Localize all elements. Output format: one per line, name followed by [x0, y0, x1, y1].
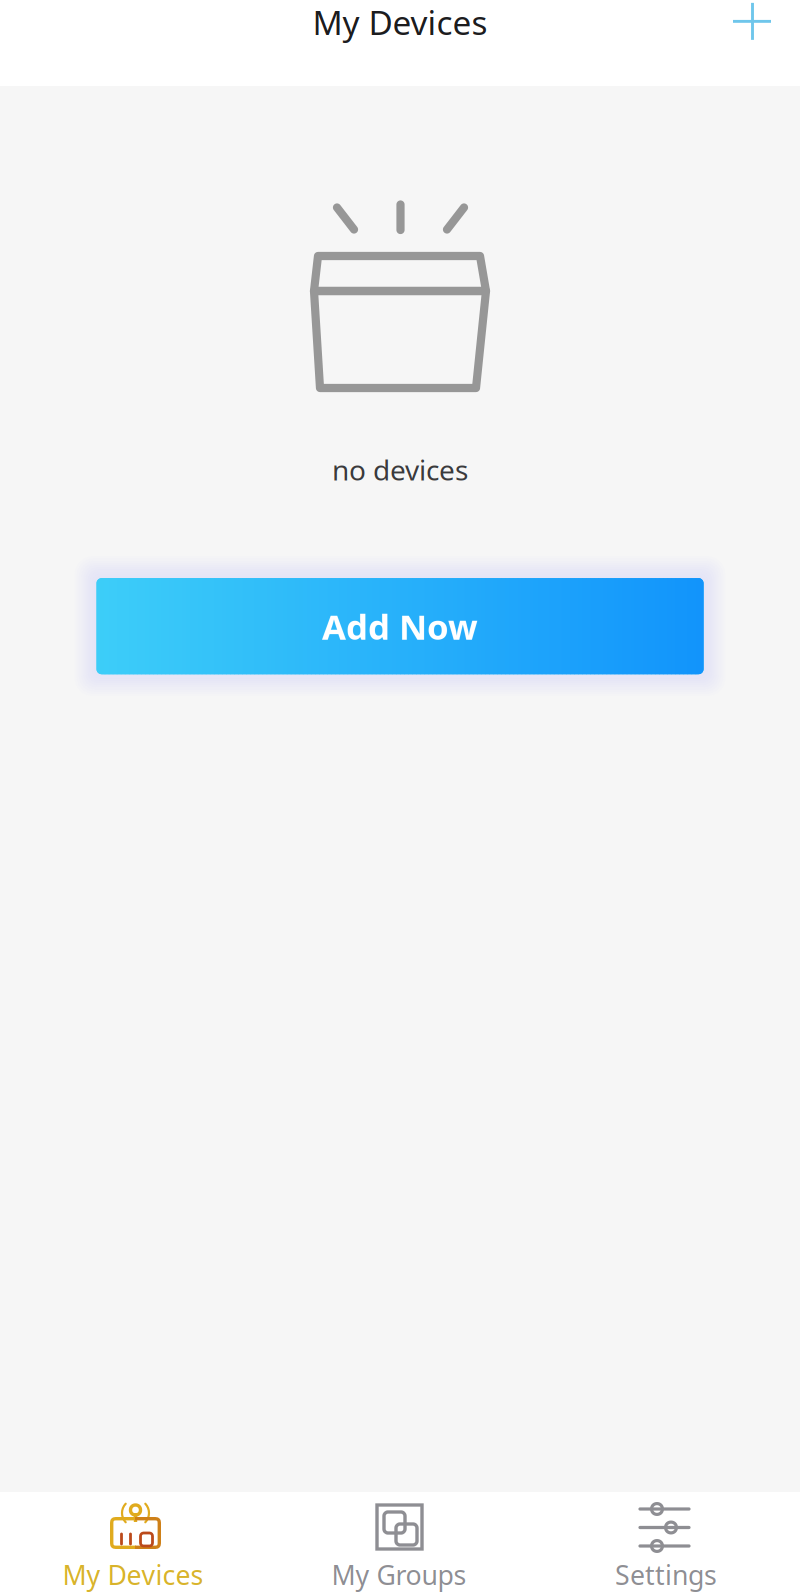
staticText: My Groups: [331, 1557, 466, 1592]
staticText: no devices: [332, 451, 468, 488]
staticText: My Devices: [312, 0, 487, 44]
staticText: My Devices: [62, 1557, 203, 1592]
button[interactable]: Add device: [732, 2, 772, 42]
staticText: Settings: [615, 1557, 717, 1592]
button[interactable]: My Groups: [266, 1488, 532, 1595]
button[interactable]: Settings: [532, 1488, 800, 1595]
button[interactable]: Add Now: [70, 551, 730, 701]
button[interactable]: My Devices: [0, 1488, 266, 1595]
staticText: Add Now: [322, 603, 478, 649]
